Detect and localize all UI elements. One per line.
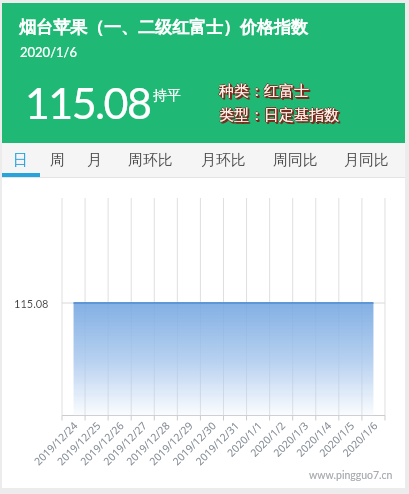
staticText: 种类：红富士 (219, 83, 309, 102)
staticText: 类型：日定基指数 (220, 106, 340, 125)
staticText: 种类：红富士 (221, 83, 311, 102)
button[interactable]: 周同比 (266, 144, 324, 176)
staticText: 2020/1/6 (20, 44, 77, 60)
staticText: 周同比 (273, 151, 318, 170)
staticText: 类型：日定基指数 (221, 107, 341, 126)
staticText: 类型：日定基指数 (220, 107, 340, 126)
staticText: 日 (13, 151, 28, 170)
staticText: 烟台苹果（一、二级红富士）价格指数 (19, 17, 308, 38)
button[interactable]: 月同比 (337, 144, 395, 176)
button[interactable]: 周环比 (121, 144, 179, 176)
staticText: 种类：红富士 (220, 82, 310, 101)
button[interactable]: 日 (3, 144, 37, 176)
staticText: 类型：日定基指数 (220, 108, 340, 127)
staticText: 类型：日定基指数 (221, 108, 341, 127)
staticText: 种类：红富士 (219, 82, 309, 101)
staticText: 月 (87, 151, 102, 170)
staticText: 类型：日定基指数 (219, 105, 339, 124)
staticText: 种类：红富士 (220, 84, 310, 103)
button[interactable]: 周 (40, 144, 74, 176)
staticText: 种类：红富士 (221, 84, 311, 103)
button[interactable]: 月 (77, 144, 111, 176)
staticText: 类型：日定基指数 (218, 106, 338, 125)
staticText: 类型：日定基指数 (219, 106, 339, 125)
staticText: 周 (50, 151, 65, 170)
staticText: 月同比 (344, 151, 389, 170)
staticText: 115.08 (25, 77, 151, 129)
staticText: 月环比 (201, 151, 246, 170)
staticText: 周环比 (128, 151, 173, 170)
staticText: 种类：红富士 (218, 82, 308, 101)
staticText: 类型：日定基指数 (219, 107, 339, 126)
staticText: 种类：红富士 (220, 83, 310, 102)
staticText: 持平 (153, 87, 181, 105)
button[interactable]: 月环比 (194, 144, 252, 176)
staticText: 种类：红富士 (219, 81, 309, 100)
